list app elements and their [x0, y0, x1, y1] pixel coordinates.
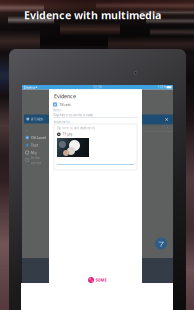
button[interactable]: Oil Level [22, 134, 49, 141]
staticText: 18 unit [59, 102, 70, 107]
staticText: Evidence with multimedia [24, 8, 161, 22]
staticText: Test [31, 142, 38, 148]
button[interactable]: 18 unit [49, 101, 142, 107]
staticText: Attachments [54, 120, 70, 124]
staticText: ‹ [26, 127, 27, 133]
staticText: Tap here to write a note [53, 112, 93, 117]
staticText: Demo [23, 85, 34, 90]
staticText: My [31, 150, 37, 155]
staticText: SOME [96, 277, 107, 283]
staticText: Evidence [54, 93, 76, 100]
staticText: #1-Veh [31, 116, 43, 122]
button[interactable]: Close [142, 114, 173, 124]
staticText: › [167, 126, 168, 129]
button[interactable]: Filter [155, 237, 167, 249]
button[interactable]: Test [22, 141, 49, 149]
staticText: In the street [31, 155, 41, 165]
staticText: Tap here to add attachments [57, 126, 95, 130]
staticText: Oil Level [31, 135, 46, 140]
staticText: 12:30 [93, 85, 102, 89]
staticText: Notes [53, 108, 61, 112]
staticText: 100% [157, 85, 165, 89]
button[interactable]: Tap here to write a note [49, 112, 142, 118]
button[interactable]: In the street [22, 156, 49, 164]
button[interactable]: My [22, 149, 49, 156]
staticText: 19.jpg [62, 132, 72, 136]
button[interactable]: #1-Veh [22, 114, 47, 123]
